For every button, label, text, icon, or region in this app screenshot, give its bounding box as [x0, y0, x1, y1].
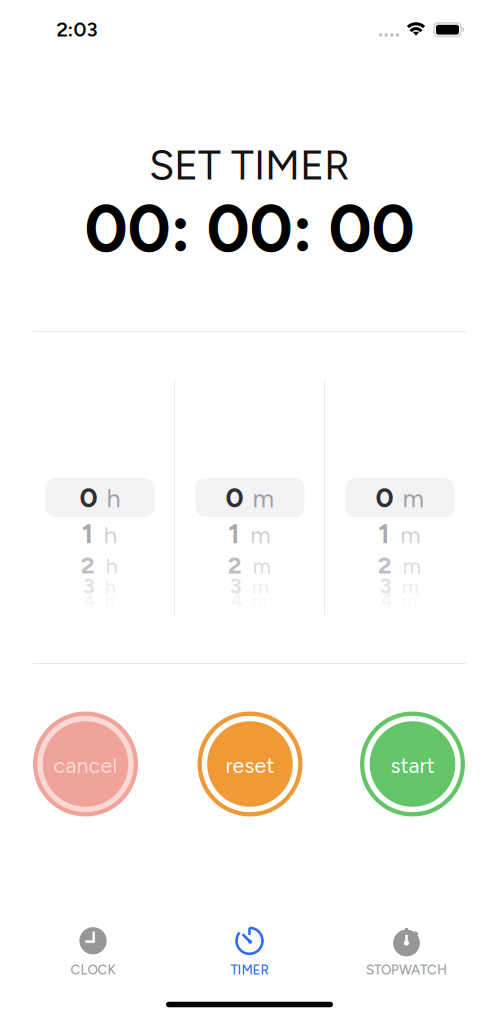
staticText: reset: [225, 753, 274, 778]
button[interactable]: cancel: [33, 711, 138, 816]
staticText: m: [400, 520, 420, 549]
staticText: m: [403, 553, 421, 579]
staticText: cancel: [53, 753, 117, 778]
staticText: start: [390, 753, 434, 778]
button[interactable]: reset: [197, 711, 302, 816]
staticText: h: [106, 483, 120, 514]
staticText: 3: [83, 573, 95, 599]
staticText: m: [253, 553, 271, 579]
staticText: h: [104, 520, 117, 549]
staticText: 00: 00: 00: [84, 188, 414, 268]
staticText: CLOCK: [70, 962, 115, 978]
staticText: 4: [231, 589, 243, 612]
staticText: 4: [381, 589, 393, 612]
staticText: h: [106, 553, 118, 579]
staticText: m: [252, 574, 269, 598]
staticText: m: [402, 591, 417, 611]
staticText: m: [402, 574, 419, 598]
staticText: 0: [225, 481, 243, 514]
staticText: 1: [228, 518, 239, 550]
staticText: 2: [81, 551, 95, 579]
button[interactable]: 0: [24, 379, 174, 615]
staticText: 3: [380, 573, 392, 599]
staticText: m: [252, 591, 267, 611]
button[interactable]: 0: [174, 379, 324, 615]
button[interactable]: start: [360, 711, 465, 816]
staticText: SET TIMER: [149, 140, 350, 190]
button[interactable]: 0: [324, 379, 474, 615]
staticText: 1: [378, 518, 389, 550]
staticText: 2: [228, 551, 242, 579]
staticText: h: [105, 591, 115, 611]
staticText: 2:03: [56, 17, 97, 41]
staticText: 4: [84, 589, 96, 612]
staticText: m: [252, 483, 274, 514]
staticText: 0: [79, 481, 97, 514]
staticText: 1: [82, 518, 93, 550]
staticText: m: [250, 520, 270, 549]
button[interactable]: CLOCK: [18, 916, 168, 990]
staticText: 0: [375, 481, 393, 514]
button[interactable]: STOPWATCH: [331, 916, 481, 990]
staticText: STOPWATCH: [366, 962, 447, 978]
button[interactable]: TIMER: [174, 916, 324, 990]
staticText: 3: [230, 573, 242, 599]
staticText: 2: [378, 551, 392, 579]
staticText: TIMER: [230, 962, 268, 978]
staticText: m: [402, 483, 424, 514]
staticText: h: [105, 574, 116, 598]
